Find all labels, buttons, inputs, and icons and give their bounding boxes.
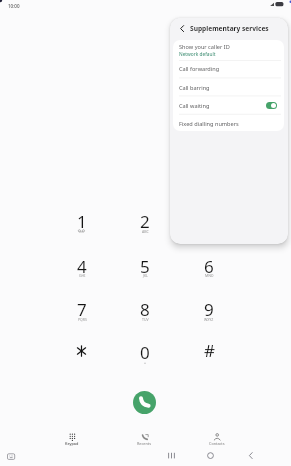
button[interactable]: 4 [66,250,98,282]
staticText: 7 [77,298,87,321]
staticText: Supplementary services [190,24,269,33]
staticText: 0 [140,341,150,364]
button[interactable]: 5 [129,250,161,282]
staticText: Fixed dialling numbers [179,120,239,128]
button[interactable] [173,96,284,114]
staticText: Call waiting [179,102,210,110]
button[interactable] [173,114,284,131]
button[interactable] [173,61,284,79]
staticText: Network default [179,51,216,58]
staticText: WXYZ [204,317,214,322]
button[interactable] [244,449,257,462]
staticText: TUV [142,317,149,322]
button[interactable] [66,337,98,369]
button[interactable]: 2 [129,205,161,237]
staticText: MNO [205,273,214,278]
button[interactable] [56,428,88,446]
button[interactable] [133,391,156,414]
button[interactable] [173,79,284,97]
button[interactable]: 9 [193,293,225,325]
staticText: ABC [142,229,149,234]
staticText: 8 [140,298,150,321]
button[interactable] [4,450,18,462]
staticText: Keypad [65,441,79,446]
staticText: Recents [137,441,152,446]
button[interactable] [174,20,190,36]
staticText: PQRS [78,317,87,322]
staticText: 5 [140,255,150,278]
button[interactable]: # [193,337,225,369]
staticText: JKL [143,273,148,278]
button[interactable]: 6 [193,250,225,282]
staticText: + [144,360,147,365]
staticText: GHI [79,273,86,278]
staticText: Show your caller ID [179,43,230,51]
button[interactable]: 1 [66,205,98,237]
button[interactable]: 0 [129,337,161,369]
button[interactable] [204,449,217,462]
staticText: 10:00 [8,3,20,9]
button[interactable]: 8 [129,293,161,325]
staticText: 6 [204,255,214,278]
staticText: 9 [204,298,214,321]
button[interactable] [266,102,277,109]
staticText: 4 [77,255,87,278]
staticText: 2 [140,210,150,233]
staticText: Call barring [179,84,210,92]
button[interactable] [165,449,178,462]
staticText: Call forwarding [179,65,220,73]
button[interactable] [173,40,284,61]
staticText: 1 [77,210,87,233]
button[interactable]: 7 [66,293,98,325]
button[interactable] [201,428,233,446]
staticText: Contacts [209,441,225,446]
staticText: # [204,339,215,362]
button[interactable] [128,428,160,446]
